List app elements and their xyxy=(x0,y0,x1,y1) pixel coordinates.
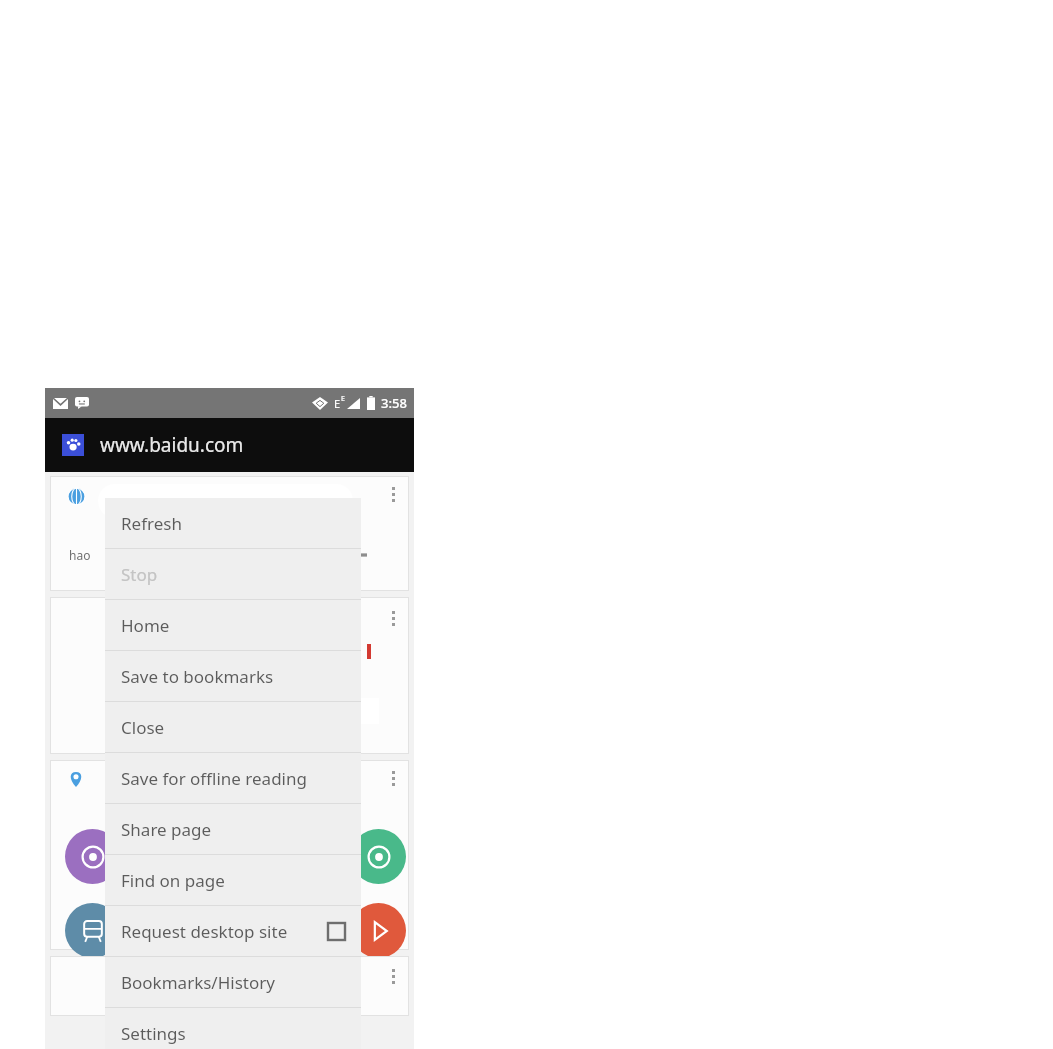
button[interactable]: More options xyxy=(388,965,399,988)
button[interactable]: Shortcut xyxy=(65,829,120,884)
button[interactable]: More options xyxy=(388,767,399,790)
button[interactable]: Request desktop site xyxy=(105,906,361,956)
button[interactable]: Bookmarks/History xyxy=(105,957,361,1007)
button[interactable]: Shortcut xyxy=(65,903,120,958)
staticText: Save to bookmarks xyxy=(121,665,345,688)
button[interactable]: Close xyxy=(105,702,361,752)
staticText: Find on page xyxy=(121,869,345,892)
button[interactable]: More options xyxy=(51,957,408,1015)
staticText: Stop xyxy=(121,563,345,586)
button[interactable]: hao xyxy=(51,477,408,590)
button[interactable]: Home xyxy=(105,600,361,650)
staticText: Settings xyxy=(121,1022,345,1045)
button[interactable]: Refresh xyxy=(105,498,361,548)
staticText: Bookmarks/History xyxy=(121,971,345,994)
button[interactable]: Save to bookmarks xyxy=(105,651,361,701)
staticText: Save for offline reading xyxy=(121,767,345,790)
staticText: Close xyxy=(121,716,345,739)
button[interactable]: Shortcut xyxy=(351,829,406,884)
staticText: hao xyxy=(69,547,91,563)
staticText: E xyxy=(334,396,341,411)
button[interactable]: Find on page xyxy=(105,855,361,905)
staticText: Share page xyxy=(121,818,345,841)
button[interactable]: www.baidu.com xyxy=(45,418,414,472)
button: Stop xyxy=(105,549,361,599)
staticText: 3:58 xyxy=(381,394,407,412)
staticText: Request desktop site xyxy=(121,920,328,943)
button[interactable]: Shortcut xyxy=(51,761,408,949)
button[interactable]: Save for offline reading xyxy=(105,753,361,803)
button[interactable]: More options xyxy=(388,607,399,630)
staticText: Home xyxy=(121,614,345,637)
staticText: Refresh xyxy=(121,512,345,535)
button[interactable]: More options xyxy=(51,598,408,753)
button[interactable]: Share page xyxy=(105,804,361,854)
button[interactable]: Shortcut xyxy=(351,903,406,958)
button[interactable]: More options xyxy=(388,483,399,506)
staticText: www.baidu.com xyxy=(100,432,244,458)
staticText: E xyxy=(341,394,345,404)
button[interactable]: Settings xyxy=(105,1008,361,1049)
